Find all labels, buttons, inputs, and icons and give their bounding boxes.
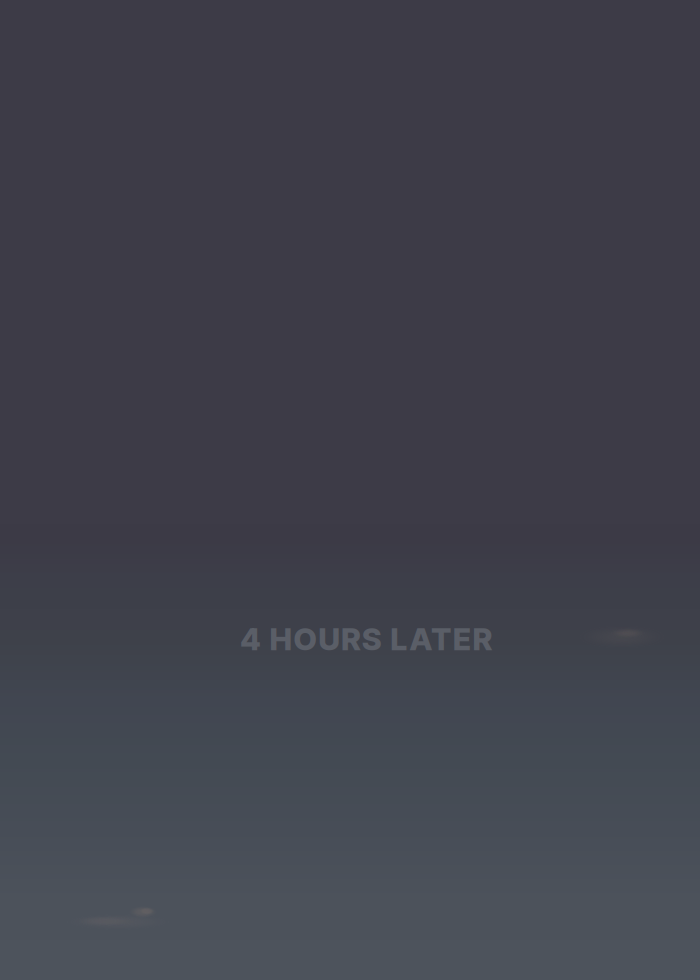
staticText: 4 HOURS LATER <box>240 620 492 657</box>
